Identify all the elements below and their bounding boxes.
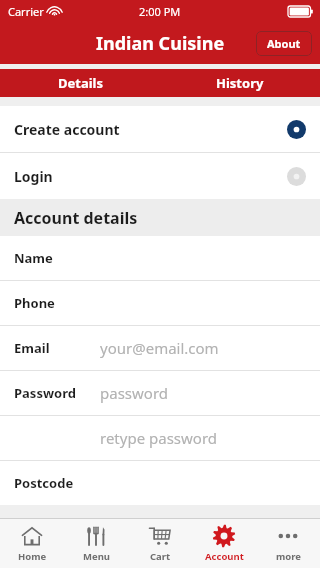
staticText: Password xyxy=(14,384,76,402)
button[interactable]: Email xyxy=(0,326,320,370)
staticText: retype password xyxy=(100,428,218,448)
button[interactable]: History xyxy=(160,69,320,97)
button[interactable]: About xyxy=(256,31,312,56)
staticText: Email xyxy=(14,339,50,357)
button[interactable]: Cart xyxy=(128,519,192,568)
staticText: Details xyxy=(58,74,103,92)
staticText: About xyxy=(267,36,301,51)
button[interactable]: Login xyxy=(0,153,320,199)
button[interactable]: Create account xyxy=(0,106,320,152)
button[interactable]: retype password xyxy=(0,416,320,460)
staticText: Create account xyxy=(14,120,120,139)
button[interactable]: Home xyxy=(0,519,64,568)
button[interactable]: Name xyxy=(0,236,320,280)
button[interactable]: Menu xyxy=(64,519,128,568)
staticText: 2:00 PM xyxy=(139,4,181,19)
staticText: Carrier xyxy=(8,4,44,19)
staticText: Name xyxy=(14,249,53,267)
staticText: Home xyxy=(18,550,47,563)
staticText: password xyxy=(100,383,168,403)
button[interactable]: Password xyxy=(0,371,320,415)
staticText: Login xyxy=(14,167,53,186)
staticText: Phone xyxy=(14,294,55,312)
staticText: more xyxy=(276,550,301,563)
staticText: Cart xyxy=(150,550,171,563)
button[interactable]: Account xyxy=(192,519,256,568)
staticText: Account xyxy=(205,550,244,563)
staticText: Account details xyxy=(14,207,138,229)
staticText: Menu xyxy=(83,550,110,563)
button[interactable]: Phone xyxy=(0,281,320,325)
staticText: your@email.com xyxy=(100,338,219,358)
staticText: History xyxy=(216,74,264,92)
staticText: Indian Cuisine xyxy=(96,31,225,56)
button[interactable]: Postcode xyxy=(0,461,320,505)
staticText: Postcode xyxy=(14,474,74,492)
button[interactable]: Details xyxy=(0,69,160,97)
button[interactable]: more xyxy=(256,519,320,568)
